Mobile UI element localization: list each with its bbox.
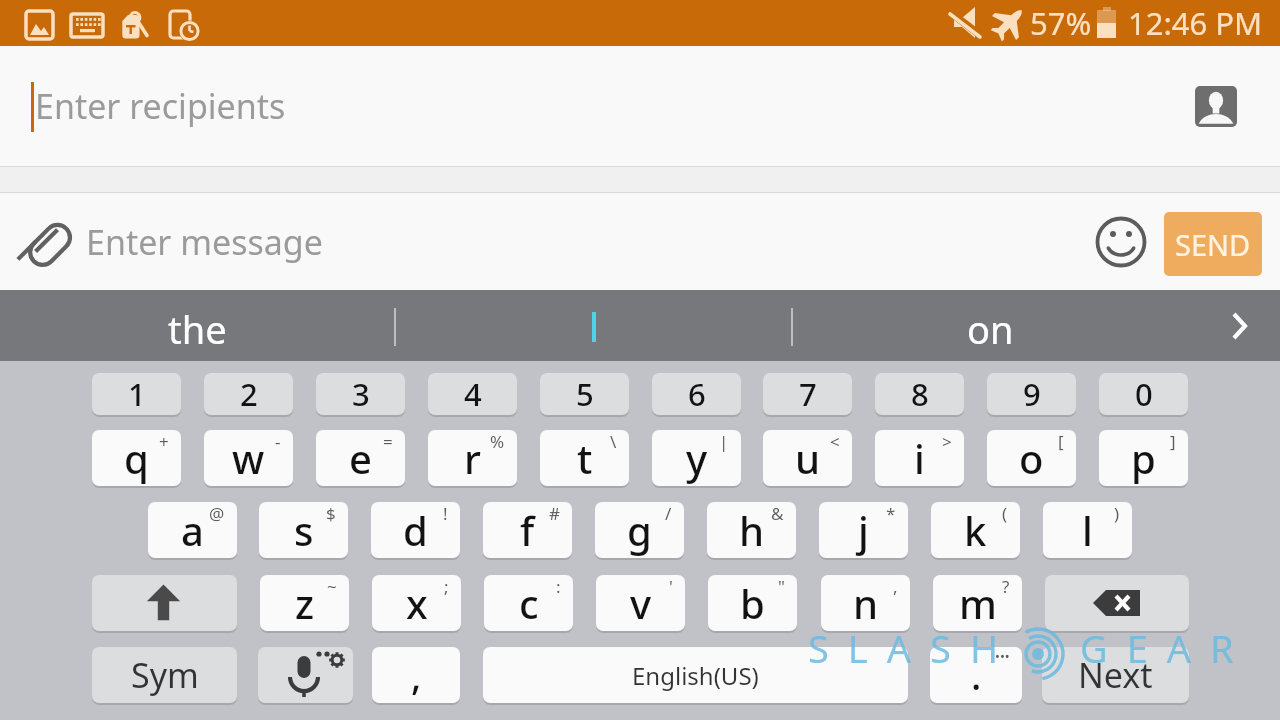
staticText: ] xyxy=(1170,430,1176,453)
staticText: 3 xyxy=(352,373,370,415)
staticText: the xyxy=(168,303,227,355)
staticText: < xyxy=(830,430,840,453)
button[interactable]: 0 xyxy=(1099,373,1188,415)
button[interactable]: 6 xyxy=(652,373,741,415)
button[interactable]: Microphone xyxy=(258,647,353,703)
staticText: r xyxy=(464,431,481,485)
staticText: / xyxy=(665,502,672,525)
button[interactable]: Shift xyxy=(92,575,237,631)
button[interactable]: 7 xyxy=(763,373,852,415)
button[interactable]: Backspace xyxy=(1045,575,1189,631)
staticText: 0 xyxy=(1135,373,1153,415)
staticText: Sym xyxy=(131,652,199,698)
button[interactable]: the xyxy=(0,293,395,364)
staticText: @ xyxy=(209,502,225,525)
staticText: * xyxy=(886,502,896,525)
button[interactable]: g xyxy=(595,502,684,558)
button[interactable]: Attach file xyxy=(13,205,85,277)
button[interactable]: Next xyxy=(1042,647,1189,703)
staticText: j xyxy=(858,503,869,557)
staticText: z xyxy=(295,576,315,630)
button[interactable]: c xyxy=(484,575,573,631)
staticText: , xyxy=(411,649,422,701)
button[interactable]: n xyxy=(821,575,910,631)
staticText: c xyxy=(519,576,539,630)
staticText: 5 xyxy=(576,373,594,415)
staticText: ••• xyxy=(995,647,1010,665)
staticText: i xyxy=(914,431,925,485)
staticText: ' xyxy=(669,575,673,598)
button[interactable]: e xyxy=(316,430,405,486)
button[interactable]: b xyxy=(708,575,797,631)
staticText: Enter recipients xyxy=(35,83,286,129)
staticText: # xyxy=(549,502,560,525)
staticText: on xyxy=(967,303,1014,355)
staticText: \ xyxy=(610,430,617,453)
button[interactable]: 4 xyxy=(428,373,517,415)
staticText: ; xyxy=(444,575,449,598)
button[interactable]: Add recipient from contacts xyxy=(1195,86,1237,127)
button[interactable]: q xyxy=(92,430,181,486)
button[interactable]: on xyxy=(793,293,1188,364)
button[interactable]: w xyxy=(204,430,293,486)
button[interactable]: p xyxy=(1099,430,1188,486)
button[interactable]: m xyxy=(933,575,1022,631)
staticText: y xyxy=(686,431,708,485)
button[interactable]: o xyxy=(987,430,1076,486)
staticText: 12:46 PM xyxy=(1128,2,1263,44)
staticText: " xyxy=(778,575,785,598)
staticText: s xyxy=(294,503,314,557)
button[interactable]: Sym xyxy=(92,647,237,703)
staticText: u xyxy=(795,431,821,485)
button[interactable]: 5 xyxy=(540,373,629,415)
staticText: > xyxy=(942,430,952,453)
button[interactable]: i xyxy=(875,430,964,486)
button[interactable]: z xyxy=(260,575,349,631)
button[interactable]: . xyxy=(930,647,1022,703)
staticText: q xyxy=(124,431,149,485)
staticText: 7 xyxy=(799,373,817,415)
button[interactable]: English(US) xyxy=(483,647,908,703)
button[interactable]: , xyxy=(372,647,460,703)
button[interactable]: a xyxy=(148,502,237,558)
staticText: 8 xyxy=(911,373,929,415)
button[interactable]: 9 xyxy=(987,373,1076,415)
button[interactable]: j xyxy=(819,502,908,558)
staticText: k xyxy=(964,503,987,557)
button[interactable]: s xyxy=(259,502,348,558)
staticText: + xyxy=(159,430,169,453)
staticText: 1 xyxy=(128,373,146,415)
button[interactable]: f xyxy=(483,502,572,558)
staticText: 9 xyxy=(1023,373,1041,415)
staticText: d xyxy=(403,503,428,557)
button[interactable]: Emoji xyxy=(1093,214,1149,270)
staticText: - xyxy=(275,430,281,453)
staticText: & xyxy=(771,502,784,525)
staticText: x xyxy=(406,576,428,630)
button[interactable]: y xyxy=(652,430,741,486)
button[interactable]: r xyxy=(428,430,517,486)
staticText: GEAR xyxy=(1080,622,1253,674)
button[interactable]: k xyxy=(931,502,1020,558)
button[interactable]: SEND xyxy=(1164,212,1262,276)
button[interactable]: 8 xyxy=(875,373,964,415)
button[interactable]: v xyxy=(596,575,685,631)
staticText: f xyxy=(520,503,535,557)
button[interactable]: h xyxy=(707,502,796,558)
button[interactable]: I xyxy=(396,293,791,364)
staticText: l xyxy=(1082,503,1093,557)
button[interactable]: More suggestions xyxy=(1208,290,1268,361)
staticText: p xyxy=(1131,431,1156,485)
button[interactable]: l xyxy=(1043,502,1132,558)
staticText: : xyxy=(556,575,561,598)
button[interactable]: x xyxy=(372,575,461,631)
button[interactable]: 3 xyxy=(316,373,405,415)
button[interactable]: 1 xyxy=(92,373,181,415)
staticText: Next xyxy=(1078,652,1153,698)
button[interactable]: t xyxy=(540,430,629,486)
button[interactable]: 2 xyxy=(204,373,293,415)
button[interactable]: u xyxy=(763,430,852,486)
button[interactable]: d xyxy=(371,502,460,558)
staticText: SEND xyxy=(1175,225,1251,264)
staticText: m xyxy=(959,576,997,630)
